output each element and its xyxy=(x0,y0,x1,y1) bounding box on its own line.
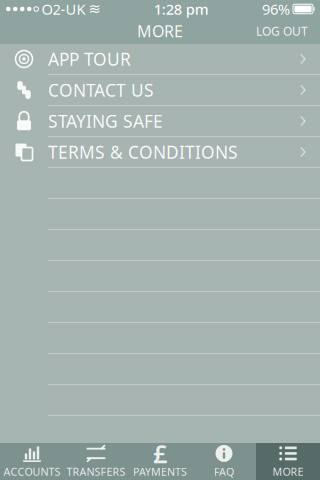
button[interactable]: LOG OUT xyxy=(248,17,316,45)
staticText: O2-UK xyxy=(41,0,85,19)
button[interactable]: ACCOUNTS xyxy=(0,443,64,480)
staticText: LOG OUT xyxy=(256,23,308,39)
staticText: MORE xyxy=(272,464,303,479)
staticText: MORE xyxy=(137,20,183,42)
staticText: 96% xyxy=(262,0,290,19)
staticText: APP TOUR xyxy=(48,47,131,70)
button[interactable]: TRANSFERS xyxy=(64,443,128,480)
button[interactable]: CONTACT US xyxy=(0,75,320,106)
button[interactable]: £ xyxy=(128,443,192,480)
button[interactable]: STAYING SAFE xyxy=(0,106,320,137)
button[interactable]: APP TOUR xyxy=(0,44,320,75)
staticText: 1:28 pm xyxy=(154,0,209,19)
button[interactable]: MORE xyxy=(256,443,320,480)
staticText: ≋ xyxy=(88,1,100,17)
staticText: FAQ xyxy=(214,464,234,479)
button[interactable]: FAQ xyxy=(192,443,256,480)
staticText: STAYING SAFE xyxy=(48,109,163,132)
staticText: PAYMENTS xyxy=(133,464,187,479)
staticText: TERMS & CONDITIONS xyxy=(48,140,238,163)
staticText: CONTACT US xyxy=(48,78,154,101)
staticText: TRANSFERS xyxy=(66,464,125,479)
button[interactable]: TERMS & CONDITIONS xyxy=(0,137,320,168)
staticText: ACCOUNTS xyxy=(3,464,60,479)
staticText: £ xyxy=(153,437,167,470)
